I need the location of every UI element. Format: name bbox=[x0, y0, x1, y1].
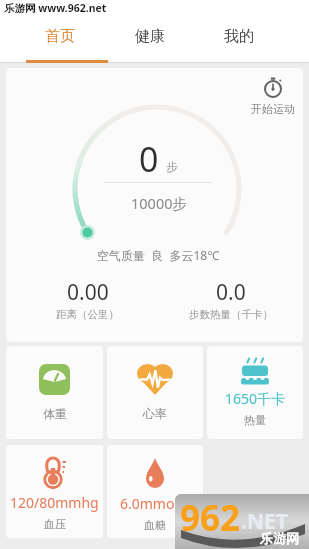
staticText: 距离（公里） bbox=[56, 308, 119, 321]
staticText: 步 bbox=[166, 160, 178, 174]
button[interactable]: 我的 bbox=[194, 20, 284, 52]
staticText: 体重 bbox=[43, 406, 67, 421]
button[interactable]: 体重 bbox=[6, 346, 103, 439]
button[interactable]: 首页 bbox=[15, 20, 105, 52]
button[interactable]: 开始运动 bbox=[251, 77, 295, 116]
staticText: 首页 bbox=[45, 27, 75, 46]
button[interactable]: 120/80mmhg bbox=[6, 445, 103, 538]
button[interactable]: 心率 bbox=[107, 346, 203, 439]
staticText: 6.0mmol/L bbox=[120, 494, 191, 513]
staticText: 空气质量 良 多云18℃ bbox=[97, 247, 220, 263]
staticText: 心率 bbox=[143, 406, 167, 421]
staticText: 乐游网 bbox=[260, 530, 299, 546]
button[interactable]: 健康 bbox=[105, 20, 194, 52]
staticText: 0.00 bbox=[67, 278, 109, 307]
staticText: 我的 bbox=[224, 27, 254, 46]
staticText: .NET bbox=[241, 507, 288, 536]
staticText: 步数热量（千卡） bbox=[189, 308, 273, 321]
staticText: 120/80mmhg bbox=[10, 493, 99, 512]
staticText: 乐游网 www.962.net bbox=[4, 1, 107, 15]
staticText: 0 bbox=[139, 136, 159, 182]
staticText: 血压 bbox=[44, 517, 66, 531]
staticText: 血糖 bbox=[144, 518, 166, 532]
button[interactable]: 6.0mmol/L bbox=[107, 445, 203, 538]
staticText: 0.0 bbox=[216, 278, 246, 307]
button[interactable]: 1650千卡 bbox=[207, 346, 303, 439]
staticText: 开始运动 bbox=[251, 102, 295, 116]
staticText: 健康 bbox=[135, 27, 165, 46]
staticText: 1650千卡 bbox=[225, 389, 286, 408]
staticText: 962 bbox=[180, 494, 241, 542]
staticText: 10000步 bbox=[131, 193, 187, 213]
staticText: 热量 bbox=[244, 413, 266, 427]
